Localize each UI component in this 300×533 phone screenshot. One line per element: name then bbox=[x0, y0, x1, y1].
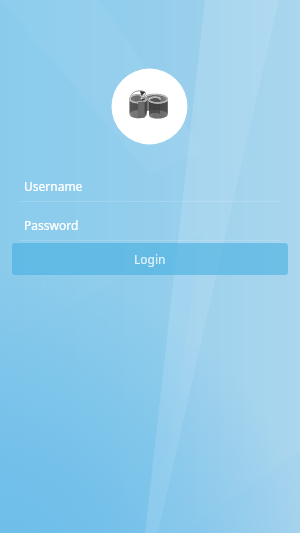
staticText: Login bbox=[134, 251, 166, 267]
button[interactable]: Username bbox=[20, 177, 280, 202]
staticText: Password bbox=[24, 217, 79, 233]
staticText: Username bbox=[24, 178, 83, 194]
button[interactable]: Password bbox=[20, 216, 280, 241]
button[interactable]: Login bbox=[12, 243, 288, 275]
